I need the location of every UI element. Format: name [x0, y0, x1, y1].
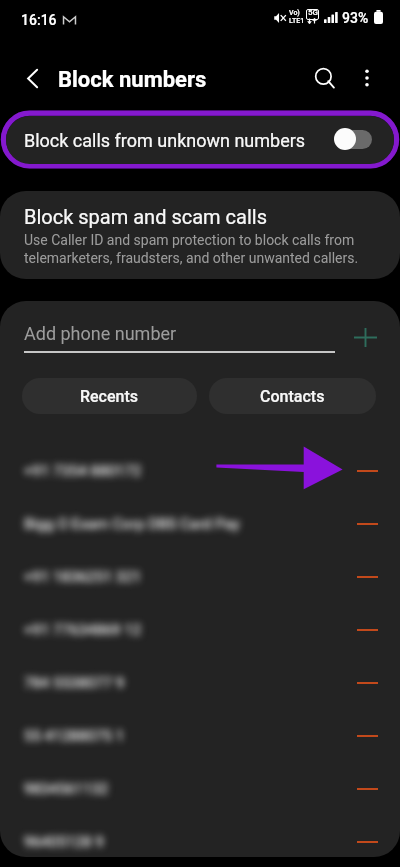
staticText: +91 77634869 12	[24, 621, 142, 639]
staticText: Recents	[80, 387, 139, 406]
staticText: Vo)	[289, 9, 300, 17]
button[interactable]: Remove	[348, 558, 386, 596]
staticText: Add phone number	[24, 323, 177, 344]
staticText: Block calls from unknown numbers	[24, 130, 306, 151]
button[interactable]: Remove	[348, 770, 386, 808]
button[interactable]: 9834561132	[0, 762, 400, 815]
button[interactable]: Remove	[348, 823, 386, 857]
staticText: 96405128 9	[24, 833, 104, 851]
button[interactable]: Remove	[348, 611, 386, 649]
staticText: 16:16	[21, 12, 57, 28]
button[interactable]: Remove	[348, 505, 386, 543]
button[interactable]: +91 77634869 12	[0, 603, 400, 656]
staticText: Contacts	[260, 387, 325, 406]
button[interactable]: 784 5538077 9	[0, 656, 400, 709]
button[interactable]: Navigate up	[12, 58, 52, 98]
staticText: +91 1836251 321	[24, 568, 142, 586]
staticText: Bigg O Exam Corp DBS Card Pay	[24, 515, 240, 533]
button[interactable]: Contacts	[209, 378, 376, 414]
staticText: 93%	[342, 10, 369, 26]
staticText: 784 5538077 9	[24, 674, 125, 692]
button[interactable]: Search	[303, 56, 347, 100]
staticText: Block spam and scam calls	[24, 205, 267, 228]
button[interactable]: Recents	[22, 378, 197, 414]
button[interactable]: Add number	[347, 319, 383, 355]
staticText: 5G	[308, 8, 318, 17]
button[interactable]: Remove	[348, 717, 386, 755]
button[interactable]: 55 41288075 1	[0, 709, 400, 762]
staticText: Block numbers	[58, 67, 207, 93]
button[interactable]: +91 1836251 321	[0, 550, 400, 603]
button[interactable]: Block calls from unknown numbers	[6, 116, 394, 164]
button[interactable]: Block spam and scam calls	[0, 191, 400, 279]
staticText: +91 7354 880172	[24, 462, 142, 480]
staticText: Use Caller ID and spam protection to blo…	[24, 232, 372, 267]
button[interactable]: More options	[345, 56, 389, 100]
button[interactable]: +91 7354 880172	[0, 444, 400, 497]
button[interactable]: Bigg O Exam Corp DBS Card Pay	[0, 497, 400, 550]
staticText: LTE1	[289, 17, 305, 25]
button[interactable]: 96405128 9	[0, 815, 400, 857]
staticText: 55 41288075 1	[24, 727, 125, 745]
button[interactable]: Remove	[348, 664, 386, 702]
button[interactable]: Remove	[348, 452, 386, 490]
staticText: 9834561132	[24, 780, 109, 798]
